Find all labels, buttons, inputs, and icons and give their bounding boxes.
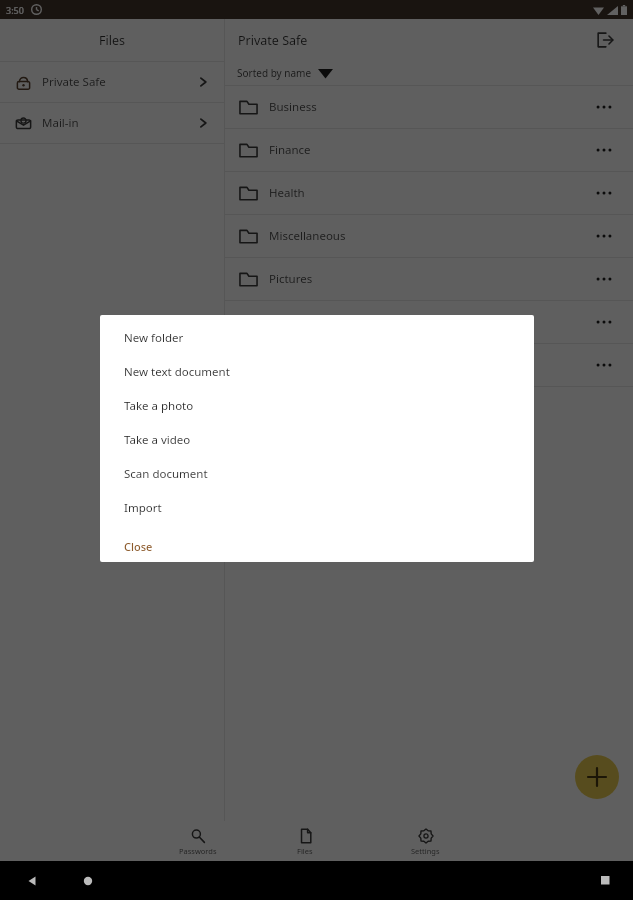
staticText: Import [124, 500, 162, 516]
staticText: Close [124, 539, 153, 554]
other: Home [83, 876, 93, 886]
button[interactable]: Close [100, 530, 534, 562]
staticText: Business [269, 99, 317, 115]
button[interactable]: More options for Business [589, 92, 619, 122]
staticText: Settings [411, 846, 440, 856]
staticText: Private Safe [238, 32, 308, 49]
staticText: Scan document [124, 466, 208, 482]
staticText: Miscellaneous [269, 228, 346, 244]
staticText: Mail-in [42, 115, 79, 131]
staticText: Private Safe [42, 74, 106, 90]
other: Back [25, 874, 39, 888]
button[interactable]: Take a photo [100, 389, 534, 423]
button[interactable]: Scan document [100, 457, 534, 491]
button[interactable]: More options for Miscellaneous [589, 221, 619, 251]
button[interactable]: New text document [100, 355, 534, 389]
staticText: Take a photo [124, 398, 194, 414]
staticText: Health [269, 185, 305, 201]
staticText: New folder [124, 330, 184, 346]
staticText: Files [99, 32, 125, 49]
staticText: Take a video [124, 432, 191, 448]
button[interactable]: New folder [100, 321, 534, 355]
button[interactable]: Business [225, 86, 633, 128]
button[interactable]: Miscellaneous [225, 215, 633, 257]
staticText: Files [297, 846, 313, 856]
button[interactable]: Private [225, 301, 633, 343]
button[interactable]: More options for Finance [589, 135, 619, 165]
button[interactable]: Import [100, 491, 534, 525]
button[interactable]: Settings [365, 821, 485, 861]
button[interactable]: Add [575, 755, 619, 799]
button[interactable]: Mail-in [0, 103, 224, 143]
button[interactable]: Receipts [225, 344, 633, 386]
staticText: Pictures [269, 271, 313, 287]
button[interactable]: Finance [225, 129, 633, 171]
staticText: Passwords [179, 846, 217, 856]
staticText: Private [269, 314, 307, 330]
button[interactable]: More options for Receipts [589, 350, 619, 380]
staticText: Sorted by name [237, 66, 312, 80]
button[interactable]: Private Safe [0, 62, 224, 102]
staticText: Finance [269, 142, 311, 158]
button[interactable]: Health [225, 172, 633, 214]
button[interactable]: More options for Health [589, 178, 619, 208]
button[interactable]: Files [245, 821, 365, 861]
button[interactable]: Passwords [150, 821, 245, 861]
staticText: New text document [124, 364, 230, 380]
button[interactable]: More options for Private [589, 307, 619, 337]
button[interactable]: More options for Pictures [589, 264, 619, 294]
button[interactable]: Pictures [225, 258, 633, 300]
button[interactable]: Sorted by name [225, 61, 633, 85]
staticText: 3:50 [6, 4, 24, 16]
button[interactable]: Take a video [100, 423, 534, 457]
button[interactable]: Log out [590, 25, 620, 55]
other: Recents [601, 876, 611, 886]
